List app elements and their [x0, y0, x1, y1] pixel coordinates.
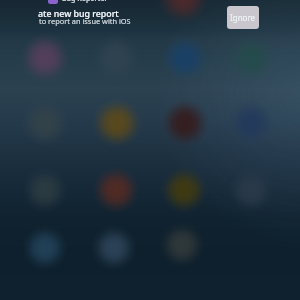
staticText: ate new bug report — [38, 8, 119, 20]
staticText: Ignore — [230, 12, 256, 23]
staticText: to report an issue with iOS — [39, 16, 131, 26]
staticText: Bug Reporter — [62, 0, 108, 4]
button[interactable]: Bug Reporter — [48, 0, 108, 4]
button[interactable]: Ignore — [227, 6, 259, 29]
